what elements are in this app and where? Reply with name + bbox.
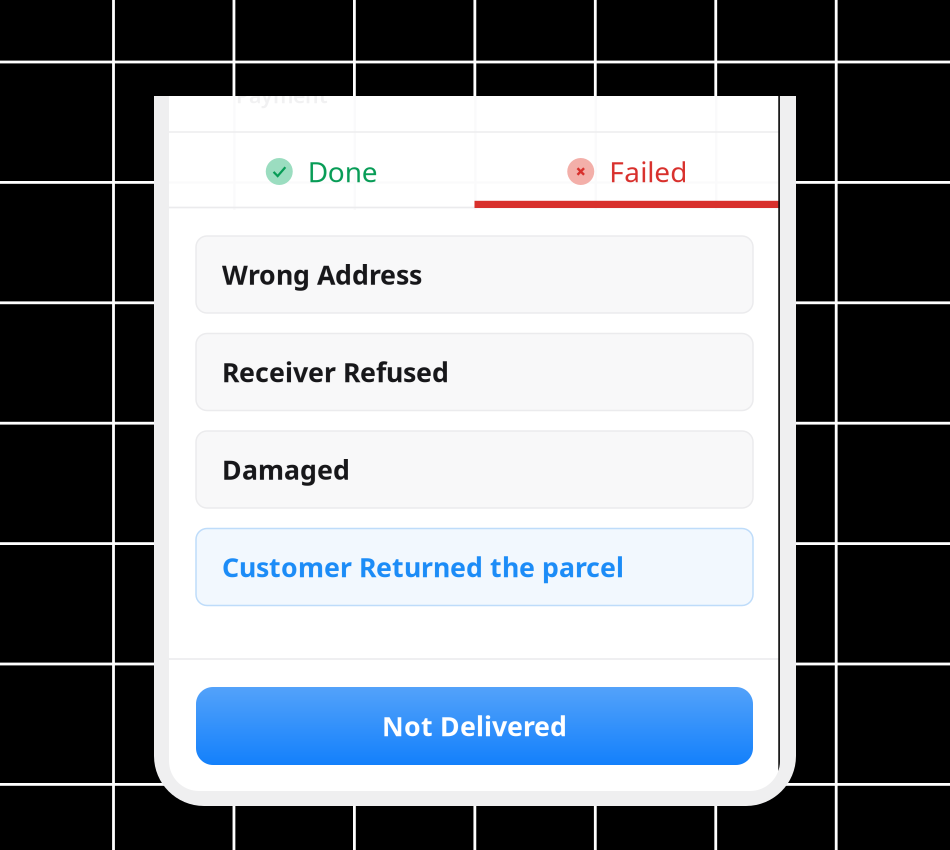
button[interactable]: Wrong Address [196,236,753,313]
staticText: Failed [609,153,687,190]
staticText: Receiver Refused [222,354,449,390]
staticText: Wrong Address [222,257,422,292]
staticText: Payment [236,81,328,109]
staticText: Customer Returned the parcel [222,549,624,585]
button[interactable]: Receiver Refused [196,333,753,410]
button[interactable]: Failed [474,130,780,208]
staticText: Not Delivered [382,708,567,744]
staticText: Done [308,153,378,190]
staticText: Damaged [222,452,350,487]
button[interactable]: Customer Returned the parcel [196,528,753,605]
button[interactable]: Done [169,130,474,208]
button[interactable]: Damaged [196,431,753,508]
button[interactable]: Not Delivered [196,687,753,765]
